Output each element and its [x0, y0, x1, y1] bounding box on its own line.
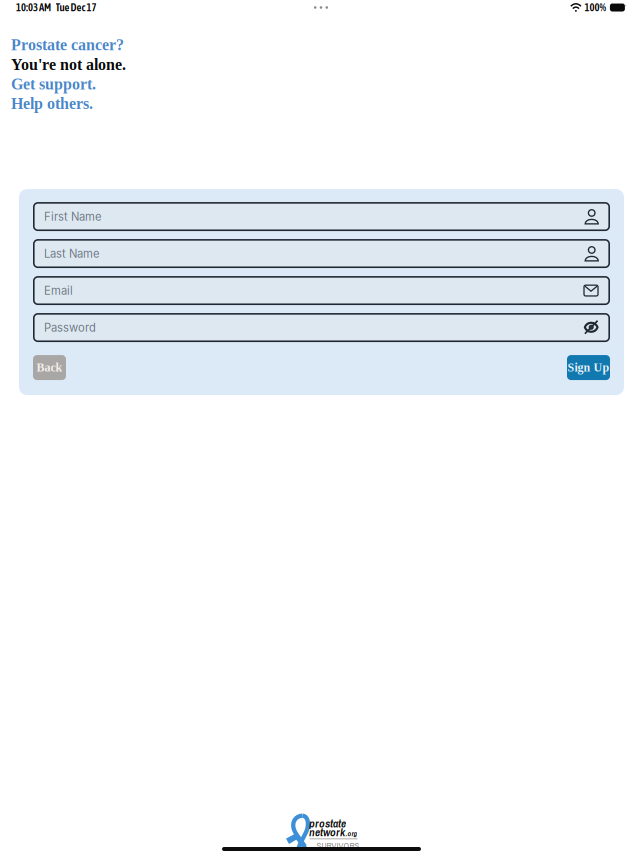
staticText: Last Name: [44, 247, 100, 260]
button[interactable]: Email: [33, 276, 610, 305]
staticText: Password: [44, 321, 96, 334]
staticText: First Name: [44, 210, 102, 223]
button[interactable]: Sign Up: [567, 355, 610, 380]
staticText: Get support.: [11, 75, 96, 93]
staticText: Tue Dec 17: [55, 1, 96, 14]
staticText: Sign Up: [567, 361, 609, 374]
button[interactable]: First Name: [33, 202, 610, 231]
staticText: .org: [345, 829, 357, 838]
staticText: SURVIVORS,: [316, 840, 361, 852]
staticText: Back: [36, 361, 62, 374]
button[interactable]: Last Name: [33, 239, 610, 268]
button[interactable]: Password: [33, 313, 610, 342]
staticText: prostate: [309, 816, 346, 831]
staticText: You're not alone.: [11, 56, 126, 73]
staticText: network: [309, 824, 345, 840]
staticText: Prostate cancer?: [11, 36, 124, 54]
staticText: 100%: [584, 1, 606, 14]
staticText: Email: [44, 284, 73, 297]
staticText: Help others.: [11, 95, 93, 113]
staticText: 10:03 AM: [16, 1, 51, 14]
button[interactable]: Back: [33, 355, 66, 380]
